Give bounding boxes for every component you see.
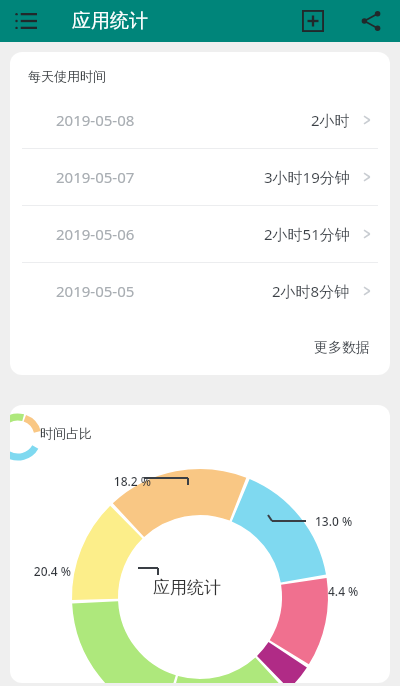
staticText: 18.2 % <box>95 473 151 489</box>
staticText: 2019-05-08 <box>56 110 135 130</box>
button[interactable]: 2019-05-05 <box>10 263 390 319</box>
button[interactable]: 更多数据 <box>314 319 390 375</box>
staticText: 4.4 % <box>328 583 384 599</box>
staticText: 2019-05-05 <box>56 281 135 301</box>
staticText: 13.0 % <box>315 513 371 529</box>
staticText: 应用统计 <box>72 9 148 33</box>
staticText: 20.4 % <box>15 563 71 579</box>
staticText: 应用统计 <box>153 577 221 598</box>
staticText: 时间占比 <box>40 425 92 441</box>
button[interactable]: 2019-05-07 <box>10 149 390 205</box>
button[interactable]: Menu <box>8 3 44 39</box>
staticText: 2019-05-07 <box>56 167 135 187</box>
staticText: 2小时 <box>311 110 350 130</box>
button[interactable]: 2019-05-06 <box>10 206 390 262</box>
button[interactable]: Add <box>294 2 332 40</box>
staticText: 3小时19分钟 <box>264 167 350 187</box>
button[interactable]: Share <box>352 2 390 40</box>
staticText: 2小时51分钟 <box>264 224 350 244</box>
staticText: 每天使用时间 <box>28 68 106 84</box>
staticText: 2019-05-06 <box>56 224 135 244</box>
button[interactable]: 2019-05-08 <box>10 92 390 148</box>
staticText: 2小时8分钟 <box>272 281 350 301</box>
